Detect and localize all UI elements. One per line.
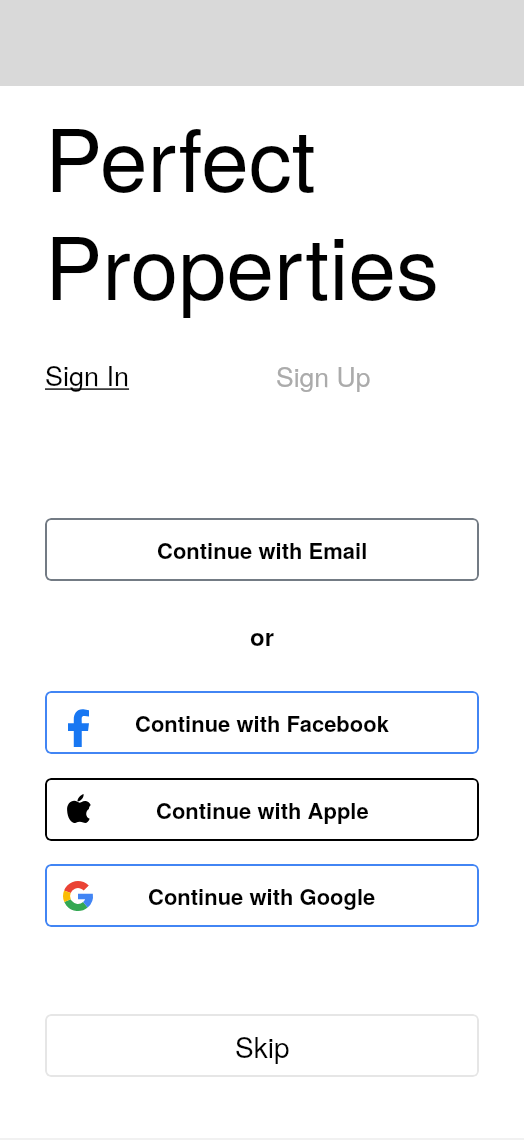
button[interactable]: Sign In <box>45 355 130 394</box>
staticText: Skip <box>235 1026 290 1066</box>
other: Google <box>63 881 93 911</box>
staticText: Continue with Email <box>157 534 368 566</box>
staticText: or <box>250 619 274 653</box>
button[interactable]: Facebook <box>45 691 479 754</box>
button[interactable]: Skip <box>45 1014 479 1077</box>
button[interactable]: Google <box>45 864 479 927</box>
staticText: Continue with Google <box>148 880 376 912</box>
button[interactable]: Apple <box>45 778 479 841</box>
staticText: Continue with Facebook <box>135 707 389 739</box>
other: Apple <box>67 794 90 823</box>
staticText: Sign Up <box>276 357 371 395</box>
button[interactable]: Continue with Email <box>45 518 479 581</box>
staticText: Sign In <box>45 355 130 394</box>
other: Facebook <box>68 709 89 747</box>
button[interactable]: Sign Up <box>276 357 371 395</box>
staticText: Continue with Apple <box>156 794 369 826</box>
staticText: Perfect Properties <box>45 93 440 324</box>
